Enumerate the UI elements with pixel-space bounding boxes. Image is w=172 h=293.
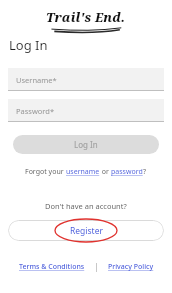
button[interactable]: password [111,167,143,177]
staticText: Username* [16,75,57,85]
staticText: ? [143,167,147,177]
button[interactable]: Log In [13,135,159,154]
staticText: Terms & Conditions [19,262,85,272]
staticText: or [100,167,111,177]
button[interactable]: Privacy Policy [106,262,156,272]
staticText: Forgot your [25,167,66,177]
staticText: password [111,167,143,177]
staticText: Don't have an account? [45,201,127,211]
button[interactable]: Username* [8,68,164,91]
staticText: Register [70,225,103,237]
staticText: Privacy Policy [108,262,154,272]
staticText: Log In [9,36,48,54]
button[interactable]: username [66,167,100,177]
staticText: username [66,167,100,177]
staticText: Password* [16,106,55,116]
staticText: Log In [74,139,98,150]
staticText: Trail's End. [46,9,126,26]
button[interactable]: Register [8,220,164,241]
button[interactable]: Terms & Conditions [17,262,87,272]
button[interactable]: Password* [8,99,164,122]
